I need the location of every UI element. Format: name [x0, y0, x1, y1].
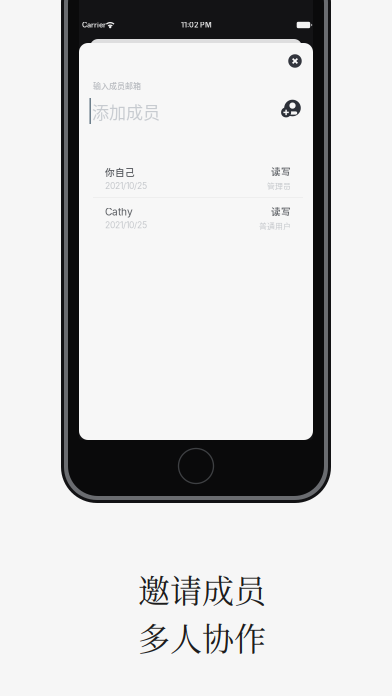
- staticText: 2021/10/25: [105, 220, 147, 230]
- staticText: 你自己: [105, 165, 135, 179]
- staticText: 输入成员邮箱: [93, 80, 141, 91]
- staticText: Carrier: [82, 21, 106, 29]
- staticText: 添加成员: [92, 99, 160, 124]
- button[interactable]: Cathy: [79, 198, 313, 238]
- staticText: 普通用户: [259, 220, 291, 232]
- staticText: 邀请成员: [138, 566, 266, 612]
- staticText: 多人协作: [138, 614, 266, 660]
- button[interactable]: 你自己: [79, 158, 313, 198]
- staticText: Cathy: [105, 206, 133, 218]
- staticText: 2021/10/25: [105, 181, 147, 191]
- staticText: 11:02 PM: [181, 21, 212, 29]
- staticText: 读写: [271, 164, 291, 178]
- button[interactable]: Close: [288, 54, 302, 68]
- staticText: 读写: [271, 204, 291, 218]
- staticText: 管理员: [267, 180, 291, 192]
- button[interactable]: Add member: [281, 99, 301, 117]
